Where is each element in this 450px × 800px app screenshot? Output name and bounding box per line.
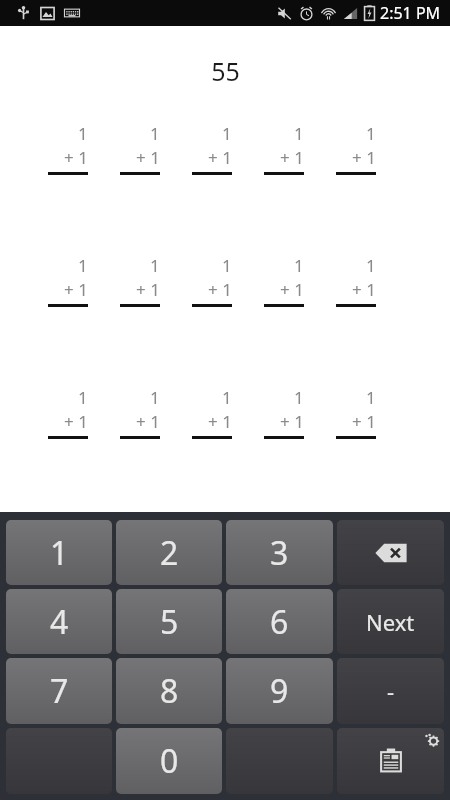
button[interactable]: 1: [48, 386, 88, 439]
button[interactable]: 1: [48, 254, 88, 307]
staticText: 1: [78, 518, 88, 541]
button[interactable]: 1: [264, 122, 304, 175]
button[interactable]: 1: [192, 386, 232, 439]
staticText: 1: [366, 386, 376, 409]
button[interactable]: 3: [226, 520, 333, 585]
button[interactable]: 1: [48, 122, 88, 175]
staticText: 1: [222, 518, 232, 541]
staticText: 1: [294, 254, 304, 277]
button[interactable]: Blank key: [6, 728, 112, 794]
staticText: 1: [150, 254, 160, 277]
staticText: 2:51 PM: [380, 2, 441, 24]
staticText: + 1: [280, 146, 304, 169]
button[interactable]: 9: [226, 658, 333, 724]
staticText: + 1: [64, 410, 88, 433]
button[interactable]: 1: [120, 518, 160, 571]
staticText: + 1: [136, 146, 160, 169]
button[interactable]: 1: [120, 386, 160, 439]
staticText: 2: [160, 531, 179, 575]
button[interactable]: 1: [48, 518, 88, 571]
staticText: 5: [160, 600, 179, 644]
staticText: 1: [366, 518, 376, 541]
staticText: -: [387, 676, 395, 706]
staticText: + 1: [208, 278, 232, 301]
staticText: + 1: [280, 542, 304, 565]
button[interactable]: 1: [120, 254, 160, 307]
staticText: 1: [150, 386, 160, 409]
staticText: 55: [211, 54, 240, 88]
staticText: + 1: [136, 278, 160, 301]
staticText: + 1: [208, 542, 232, 565]
button[interactable]: 1: [192, 122, 232, 175]
button[interactable]: 1: [264, 386, 304, 439]
staticText: 1: [50, 531, 69, 575]
button[interactable]: 1: [264, 254, 304, 307]
staticText: + 1: [352, 278, 376, 301]
button[interactable]: 4: [6, 589, 112, 654]
staticText: + 1: [64, 146, 88, 169]
staticText: + 1: [280, 410, 304, 433]
staticText: 1: [366, 122, 376, 145]
staticText: 1: [78, 254, 88, 277]
staticText: 7: [50, 669, 69, 713]
button[interactable]: 1: [336, 122, 376, 175]
button[interactable]: 0: [116, 728, 222, 794]
staticText: 1: [222, 254, 232, 277]
button[interactable]: 1: [192, 518, 232, 571]
button[interactable]: 1: [192, 254, 232, 307]
button[interactable]: 8: [116, 658, 222, 724]
staticText: + 1: [280, 278, 304, 301]
button[interactable]: -: [337, 658, 444, 724]
button[interactable]: 2: [116, 520, 222, 585]
staticText: 1: [294, 122, 304, 145]
staticText: + 1: [64, 278, 88, 301]
staticText: + 1: [208, 410, 232, 433]
button[interactable]: 6: [226, 589, 333, 654]
staticText: 9: [270, 669, 289, 713]
staticText: 1: [294, 518, 304, 541]
button[interactable]: 1: [6, 520, 112, 585]
button[interactable]: 1: [336, 518, 376, 571]
button[interactable]: Blank key: [226, 728, 333, 794]
staticText: 8: [160, 669, 179, 713]
button[interactable]: Next: [337, 589, 444, 654]
staticText: 6: [270, 600, 289, 644]
staticText: 1: [78, 386, 88, 409]
button[interactable]: 1: [120, 122, 160, 175]
staticText: 1: [150, 518, 160, 541]
staticText: 4: [50, 600, 69, 644]
button[interactable]: Clipboard and settings: [337, 728, 444, 794]
staticText: 1: [222, 122, 232, 145]
staticText: + 1: [208, 146, 232, 169]
staticText: 1: [78, 122, 88, 145]
staticText: 1: [366, 254, 376, 277]
staticText: + 1: [352, 410, 376, 433]
staticText: 1: [150, 122, 160, 145]
button[interactable]: 1: [336, 386, 376, 439]
staticText: Next: [366, 607, 415, 637]
staticText: + 1: [352, 146, 376, 169]
staticText: + 1: [136, 410, 160, 433]
button[interactable]: 1: [264, 518, 304, 571]
staticText: 0: [160, 739, 179, 783]
staticText: 1: [222, 386, 232, 409]
button[interactable]: Backspace: [337, 520, 444, 585]
button[interactable]: 7: [6, 658, 112, 724]
button[interactable]: 5: [116, 589, 222, 654]
button[interactable]: 1: [336, 254, 376, 307]
staticText: 1: [294, 386, 304, 409]
staticText: 3: [270, 531, 289, 575]
